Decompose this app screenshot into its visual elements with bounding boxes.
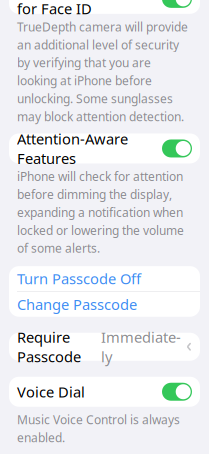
button[interactable]: Attention-Aware Features — [9, 133, 200, 163]
staticText: Music Voice Control is always enabled. — [17, 412, 180, 446]
button[interactable]: Turn Passcode Off — [9, 266, 200, 291]
staticText: Immediately — [101, 327, 181, 366]
staticText: Attention-Aware Features — [17, 129, 128, 168]
staticText: Change Passcode — [17, 294, 137, 314]
button[interactable]: Change Passcode — [9, 292, 200, 317]
button[interactable]: Require Passcode — [9, 333, 200, 361]
staticText: Require Passcode — [17, 327, 81, 366]
staticText: TrueDepth camera will provide an additio… — [17, 19, 188, 124]
staticText: iPhone will check for attention before d… — [17, 168, 184, 256]
staticText: Voice Dial — [17, 382, 85, 401]
staticText: Turn Passcode Off — [17, 269, 141, 288]
staticText: Require Attention for Face ID — [17, 0, 137, 18]
button[interactable]: Require Attention for Face ID — [9, 0, 200, 14]
button[interactable]: Voice Dial — [9, 377, 200, 407]
